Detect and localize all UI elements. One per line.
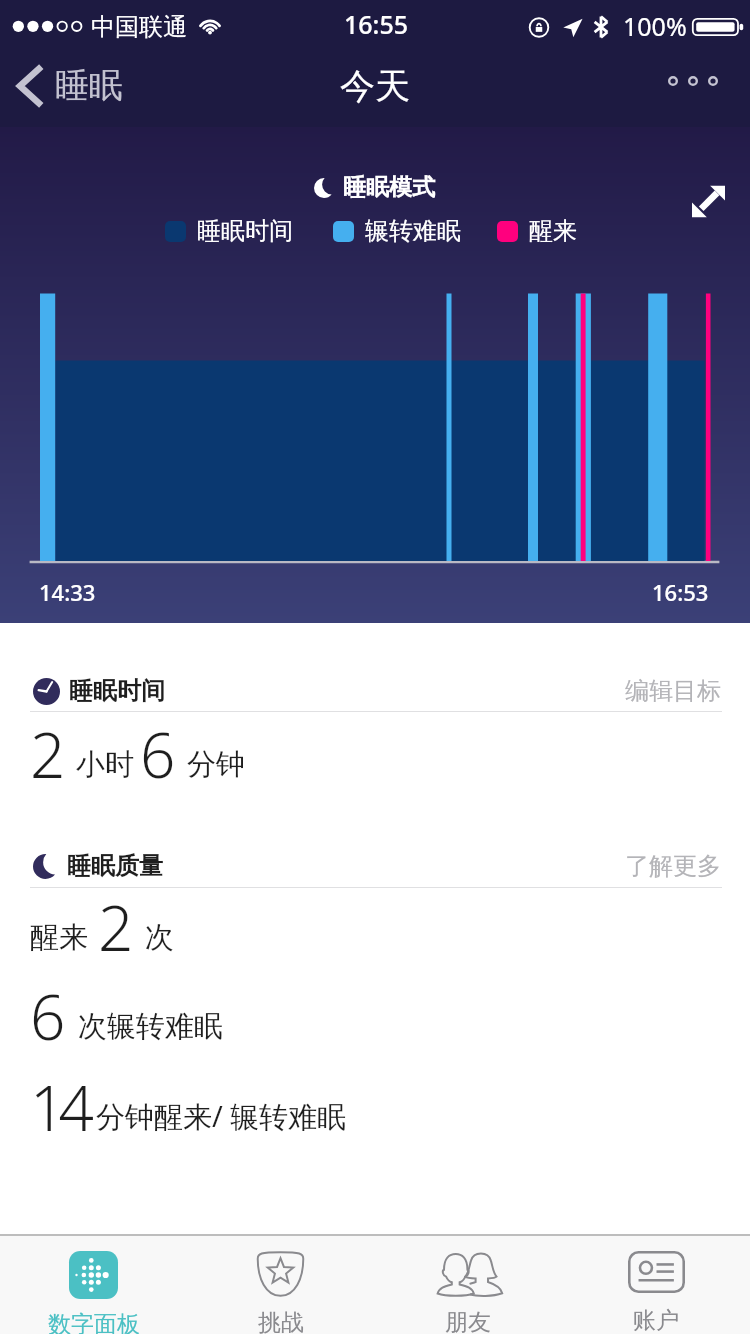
button[interactable]: 睡眠	[0, 54, 141, 117]
staticText: 14:33	[39, 577, 96, 607]
button[interactable]: More options	[646, 58, 740, 104]
staticText: 100%	[623, 9, 687, 43]
button[interactable]: Expand chart	[685, 178, 732, 225]
staticText: 账户	[633, 1306, 679, 1334]
button[interactable]: 挑战	[187, 1236, 374, 1334]
staticText: 了解更多	[625, 851, 721, 881]
staticText: 分钟醒来/ 辗转难眠	[96, 1096, 347, 1136]
button[interactable]: 睡眠质量	[0, 844, 750, 888]
staticText: 挑战	[258, 1308, 304, 1334]
staticText: 2	[98, 885, 134, 969]
staticText: 睡眠时间	[197, 216, 293, 246]
staticText: 中国联通	[91, 12, 187, 42]
staticText: 醒来	[30, 919, 88, 956]
staticText: 6	[140, 712, 176, 796]
staticText: 睡眠时间	[69, 676, 165, 706]
staticText: 6	[30, 974, 66, 1058]
button[interactable]: 朋友	[374, 1236, 562, 1334]
button[interactable]: 账户	[562, 1236, 750, 1334]
staticText: 辗转难眠	[365, 216, 461, 246]
staticText: 数字面板	[48, 1310, 140, 1334]
staticText: 醒来	[529, 216, 577, 246]
button[interactable]: 睡眠时间	[0, 669, 750, 713]
staticText: 睡眠质量	[67, 851, 163, 881]
staticText: 编辑目标	[625, 676, 721, 706]
staticText: 睡眠模式	[343, 173, 435, 202]
staticText: 睡眠	[55, 64, 123, 107]
staticText: 16:55	[344, 7, 409, 41]
staticText: 次	[145, 919, 174, 956]
button[interactable]: 数字面板	[0, 1236, 187, 1334]
staticText: 小时	[76, 746, 134, 783]
staticText: 16:53	[652, 577, 709, 607]
staticText: 14	[30, 1065, 87, 1149]
staticText: 2	[30, 712, 66, 796]
staticText: 今天	[340, 64, 410, 108]
staticText: 分钟	[187, 746, 245, 783]
staticText: 次辗转难眠	[78, 1008, 223, 1045]
staticText: 朋友	[445, 1308, 491, 1334]
